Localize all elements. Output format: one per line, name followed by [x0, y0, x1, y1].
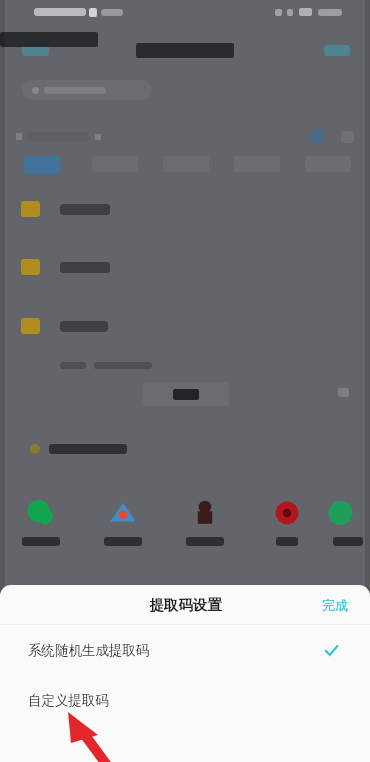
button[interactable]: Expand [338, 388, 349, 397]
button[interactable] [0, 313, 370, 339]
button[interactable] [0, 254, 370, 280]
button[interactable] [164, 498, 246, 546]
button[interactable] [143, 382, 229, 406]
button[interactable]: Sort [310, 130, 323, 143]
staticText: 自定义提取码 [28, 692, 109, 709]
button[interactable] [82, 498, 164, 546]
button[interactable] [24, 156, 60, 174]
button[interactable]: 系统随机生成提取码 [0, 625, 370, 675]
staticText: 系统随机生成提取码 [28, 642, 150, 659]
button[interactable] [0, 196, 370, 222]
staticText: 完成 [322, 597, 348, 613]
button[interactable] [0, 498, 82, 546]
button[interactable] [328, 498, 368, 546]
button[interactable]: Back [22, 45, 49, 56]
button[interactable]: More [324, 45, 350, 56]
button[interactable] [22, 80, 152, 100]
staticText: 提取码设置 [149, 596, 222, 614]
button[interactable]: 自定义提取码 [0, 675, 370, 725]
button[interactable]: 完成 [316, 591, 354, 619]
button[interactable] [246, 498, 328, 546]
